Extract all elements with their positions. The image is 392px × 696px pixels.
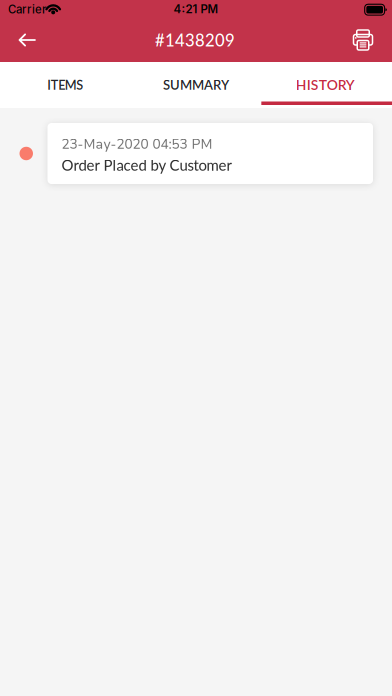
- button[interactable]: Print: [344, 22, 382, 62]
- button[interactable]: HISTORY: [261, 62, 392, 108]
- staticText: 23-May-2020 04:53 PM: [61, 135, 212, 154]
- button[interactable]: SUMMARY: [131, 62, 261, 108]
- staticText: Order Placed by Customer: [61, 156, 231, 174]
- staticText: SUMMARY: [163, 77, 229, 93]
- staticText: 4:21 PM: [173, 2, 218, 16]
- staticText: Carrier: [8, 2, 46, 16]
- button[interactable]: Back: [10, 22, 44, 62]
- staticText: #1438209: [155, 30, 235, 50]
- staticText: ITEMS: [47, 77, 83, 92]
- button[interactable]: ITEMS: [0, 62, 131, 108]
- staticText: HISTORY: [296, 76, 355, 93]
